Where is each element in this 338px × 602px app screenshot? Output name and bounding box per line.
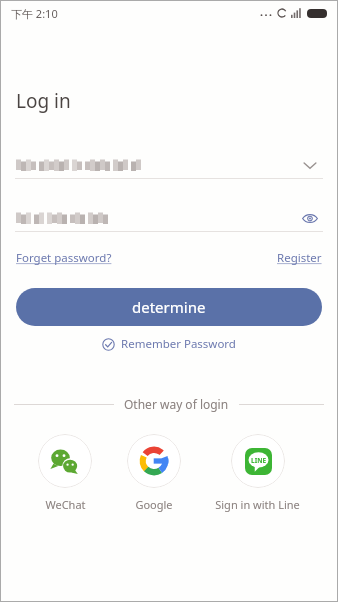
button[interactable]: Select account (15, 152, 323, 178)
staticText: WeChat (45, 497, 86, 512)
button[interactable]: Forget password? (16, 250, 112, 266)
button[interactable]: Show password (297, 205, 323, 231)
staticText: Remember Password (121, 336, 236, 352)
staticText: Sign in with Line (215, 497, 300, 512)
button[interactable]: Show password (15, 205, 323, 231)
button[interactable]: Register (277, 250, 322, 266)
button[interactable]: Log in with Google (123, 434, 185, 512)
staticText: Other way of login (124, 396, 229, 412)
staticText: LINE (251, 456, 267, 465)
staticText: Log in (16, 88, 71, 114)
button[interactable]: determine (16, 288, 322, 326)
staticText: Google (135, 497, 173, 512)
button[interactable]: Sign in with Line (211, 434, 304, 512)
staticText: 下午 2:10 (11, 6, 58, 21)
button[interactable]: Select account (297, 152, 323, 178)
button[interactable]: Log in with WeChat (34, 434, 96, 512)
button[interactable]: Remember Password (102, 336, 236, 352)
staticText: Register (277, 250, 322, 266)
staticText: determine (132, 297, 206, 317)
staticText: Forget password? (16, 250, 112, 266)
